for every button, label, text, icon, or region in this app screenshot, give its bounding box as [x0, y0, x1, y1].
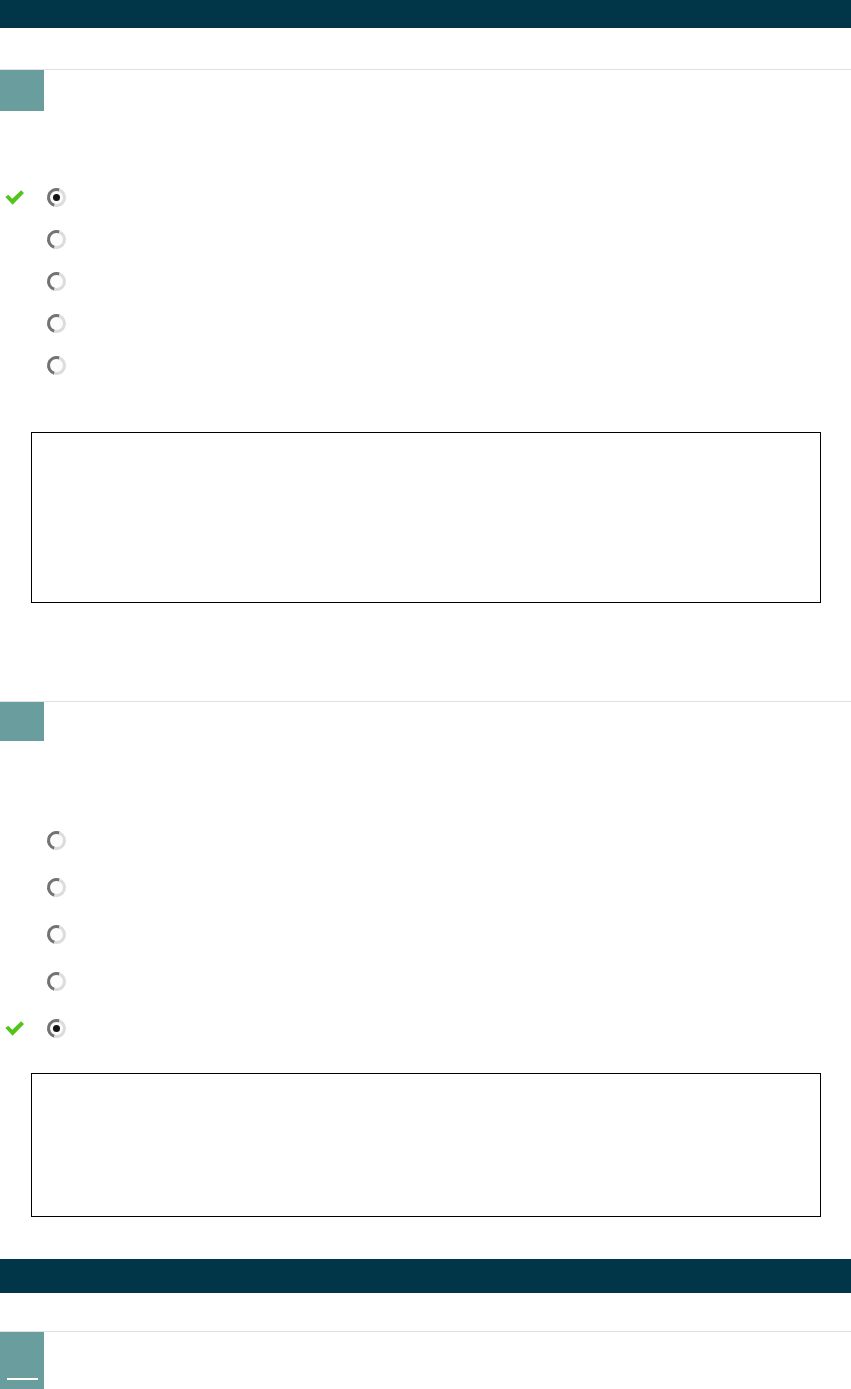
button[interactable]: Answer option — [0, 227, 851, 252]
button[interactable]: Answer option — [44, 828, 69, 853]
button[interactable]: Answer selected — [44, 185, 69, 210]
button[interactable]: Explanation — [31, 432, 821, 603]
button[interactable]: Answer option — [44, 311, 69, 336]
button[interactable]: Answer option — [44, 922, 69, 947]
button[interactable]: Answer option — [0, 311, 851, 336]
button[interactable]: Answer option — [0, 269, 851, 294]
button[interactable]: Answer option — [44, 969, 69, 994]
button[interactable]: Answer option — [44, 875, 69, 900]
button[interactable]: Answer option — [0, 827, 851, 853]
button[interactable]: Answer option — [44, 353, 69, 378]
button[interactable]: Answer option — [0, 353, 851, 378]
button[interactable]: Answer selected — [0, 1015, 851, 1041]
button[interactable]: Answer option — [0, 874, 851, 900]
button[interactable]: Question number — [0, 1332, 44, 1389]
button[interactable]: Answer option — [0, 968, 851, 994]
button[interactable]: Answer option — [44, 269, 69, 294]
button[interactable]: Answer selected — [0, 185, 851, 210]
button[interactable]: Answer selected — [44, 1016, 69, 1041]
button[interactable]: Answer option — [44, 227, 69, 252]
button[interactable]: Explanation — [31, 1073, 821, 1217]
button[interactable]: Answer option — [0, 921, 851, 947]
